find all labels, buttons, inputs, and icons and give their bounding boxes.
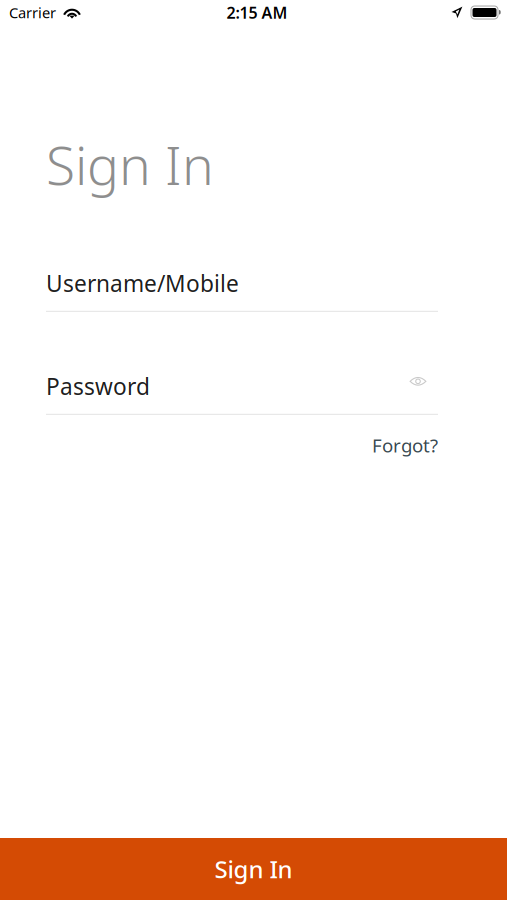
staticText: Forgot? — [372, 433, 438, 458]
staticText: Sign In — [214, 853, 292, 885]
staticText: Username/Mobile — [46, 268, 239, 298]
button[interactable]: Forgot? — [356, 423, 438, 468]
button[interactable]: Username/Mobile — [46, 270, 438, 297]
staticText: Carrier — [9, 3, 56, 22]
staticText: Sign In — [46, 129, 214, 200]
button[interactable]: Sign In — [0, 838, 507, 900]
staticText: 2:15 AM — [226, 2, 287, 23]
button[interactable]: Show password — [401, 373, 438, 400]
staticText: Password — [46, 371, 150, 401]
button[interactable]: Password — [46, 373, 401, 400]
